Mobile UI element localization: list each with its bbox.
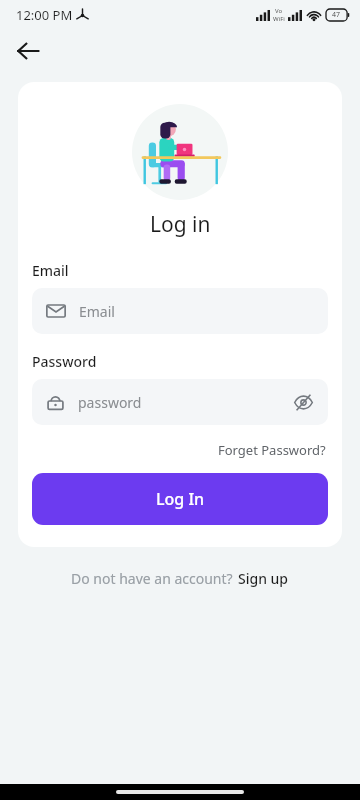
staticText: Log in xyxy=(150,210,211,239)
button[interactable]: Show password xyxy=(293,392,314,413)
staticText: Password xyxy=(32,352,97,371)
button[interactable]: Sign up xyxy=(237,567,290,590)
staticText: Email xyxy=(32,261,69,280)
staticText: Forget Password? xyxy=(218,441,326,459)
staticText: Do not have an account? xyxy=(71,569,237,588)
staticText: Email xyxy=(79,302,115,321)
staticText: 12:00 PM xyxy=(16,6,73,24)
button[interactable]: Forget Password? xyxy=(216,439,328,461)
button[interactable]: password xyxy=(32,379,328,425)
staticText: 47 xyxy=(332,10,341,20)
staticText: Log In xyxy=(156,488,205,510)
staticText: Sign up xyxy=(238,569,289,588)
staticText: password xyxy=(78,393,142,412)
staticText: Vo xyxy=(275,7,283,15)
button[interactable]: Back xyxy=(8,31,48,71)
button[interactable]: Email xyxy=(32,288,328,334)
button[interactable]: Log In xyxy=(32,473,328,525)
staticText: WiFi xyxy=(273,15,285,23)
